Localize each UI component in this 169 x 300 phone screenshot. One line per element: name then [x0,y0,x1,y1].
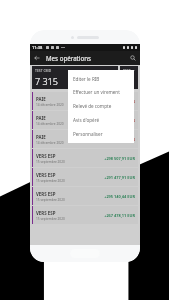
staticText: TEST [123,68,131,73]
staticText: VERS ESP [36,172,56,178]
button[interactable]: Editer le RIB [68,72,134,85]
staticText: +295 140,44 EUR [104,194,135,199]
staticText: Editer le RIB [73,76,100,82]
staticText: 15 septembre 2020 [36,179,65,183]
staticText: 14 décembre 2020 [36,122,64,126]
staticText: 15 septembre 2020 [36,198,65,202]
staticText: +298 507,91 EUR [104,156,135,161]
staticText: 11:38 [32,45,43,50]
staticText: Mes opérations [46,54,91,62]
staticText: TEST CMD [35,68,52,73]
staticText: Avis d'opéré [73,117,100,123]
button[interactable]: VERS ESP [32,187,138,205]
staticText: -70 051 900,00 EUR [99,137,135,142]
button[interactable]: TEST CMD [32,66,118,89]
button[interactable]: VERS ESP [32,168,138,186]
button[interactable]: Search [126,51,140,65]
button[interactable]: Personnaliser [68,127,134,141]
staticText: PAIE [36,134,46,140]
staticText: Effectuer un virement [73,89,120,95]
staticText: -70 051 900,00 EUR [99,118,135,123]
staticText: Relevé de compte [73,103,112,109]
staticText: 7 315 [35,75,58,87]
button[interactable]: PAIE [32,130,138,148]
button[interactable]: Effectuer un virement [68,85,134,99]
button[interactable]: PAIE [32,111,138,129]
staticText: -70 051 900,00 EUR [99,99,135,104]
button[interactable]: Relevé de compte [68,99,134,113]
staticText: VERS ESP [36,191,56,197]
staticText: 14 décembre 2020 [36,141,64,145]
staticText: 15 septembre 2020 [36,217,65,221]
button[interactable]: VERS ESP [32,206,138,224]
staticText: +267 478,11 EUR [104,213,135,218]
button[interactable]: TEST [120,66,138,89]
staticText: ••• [111,69,115,73]
staticText: 14 décembre 2020 [36,103,64,107]
staticText: +291 477,91 EUR [104,175,135,180]
button[interactable]: PAIE [32,92,138,110]
staticText: VERS ESP [36,210,56,216]
staticText: VERS ESP [36,153,56,159]
staticText: 15 septembre 2020 [36,160,65,164]
button[interactable]: Avis d'opéré [68,113,134,127]
staticText: PAIE [36,96,46,102]
staticText: Personnaliser [73,131,103,137]
staticText: PAIE [36,115,46,121]
staticText: ••• [131,69,135,73]
button[interactable]: Back [30,51,44,65]
button[interactable]: VERS ESP [32,149,138,167]
